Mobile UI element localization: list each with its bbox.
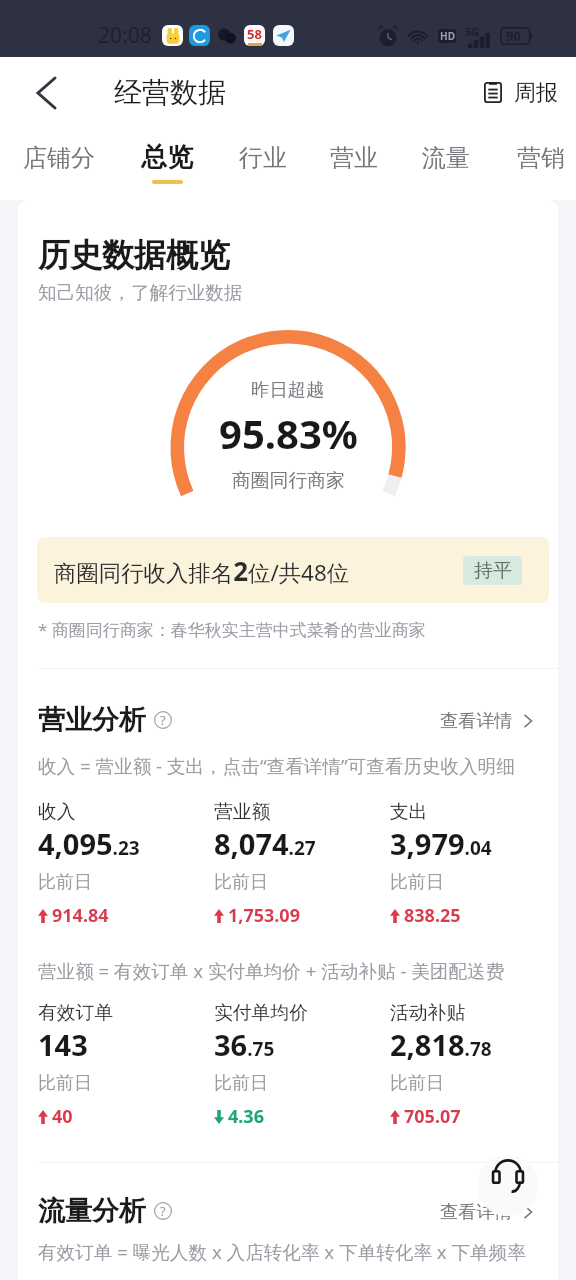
staticText: 90: [506, 27, 521, 45]
button[interactable]: 流量: [386, 128, 506, 173]
staticText: 1,753.09: [228, 903, 300, 928]
button[interactable]: Help: [154, 1202, 172, 1220]
staticText: 总览: [141, 141, 193, 174]
staticText: 914.84: [52, 903, 109, 928]
staticText: 58: [247, 25, 262, 43]
staticText: 经营数据: [114, 75, 226, 110]
staticText: 2,818.78: [390, 1025, 492, 1064]
staticText: 历史数据概览: [38, 235, 230, 275]
staticText: 比前日: [390, 1072, 444, 1095]
staticText: 20:08: [98, 21, 152, 50]
staticText: 3,979.04: [390, 824, 492, 863]
staticText: 流量: [422, 143, 470, 173]
staticText: 有效订单 = 曝光人数 x 入店转化率 x 下单转化率 x 下单频率: [38, 1239, 526, 1264]
staticText: HD: [440, 29, 455, 43]
staticText: 比前日: [390, 871, 444, 894]
button[interactable]: Back: [0, 57, 92, 128]
button[interactable]: Customer service: [477, 1155, 538, 1216]
staticText: 4,095.23: [38, 824, 140, 863]
button[interactable]: 查看详情: [440, 1200, 533, 1223]
button[interactable]: 行业: [203, 128, 323, 173]
staticText: 比前日: [38, 871, 92, 894]
staticText: 5G: [465, 24, 480, 39]
staticText: 705.07: [404, 1104, 461, 1129]
staticText: 支出: [390, 800, 428, 824]
staticText: 实付单均价: [214, 1001, 308, 1025]
staticText: ?: [160, 711, 166, 729]
staticText: 活动补贴: [390, 1001, 466, 1025]
staticText: 昨日超越: [251, 378, 325, 401]
staticText: 4.36: [228, 1104, 264, 1129]
staticText: 838.25: [404, 903, 461, 928]
staticText: 查看详情: [440, 709, 513, 732]
button[interactable]: 营业: [294, 128, 414, 173]
staticText: 40: [52, 1104, 73, 1129]
staticText: 商圈同行收入排名2位/共48位: [54, 553, 350, 588]
button[interactable]: 营销: [481, 128, 576, 173]
staticText: 有效订单: [38, 1001, 114, 1025]
staticText: 营业额 = 有效订单 x 实付单均价 + 活动补贴 - 美团配送费: [38, 958, 505, 983]
staticText: 比前日: [214, 1072, 268, 1095]
staticText: ?: [160, 1202, 166, 1220]
button[interactable]: 店铺分: [0, 128, 119, 173]
staticText: 8,074.27: [214, 824, 316, 863]
staticText: 收入 = 营业额 - 支出，点击“查看详情”可查看历史收入明细: [38, 753, 515, 778]
staticText: 周报: [514, 79, 558, 107]
staticText: 营业: [330, 143, 378, 173]
staticText: 营销: [517, 143, 565, 173]
staticText: 95.83%: [219, 406, 358, 460]
button[interactable]: 总览: [107, 128, 227, 184]
staticText: 店铺分: [23, 143, 95, 173]
staticText: 比前日: [214, 871, 268, 894]
staticText: 36.75: [214, 1025, 275, 1064]
staticText: 比前日: [38, 1072, 92, 1095]
staticText: 流量分析: [38, 1194, 146, 1228]
button[interactable]: Help: [154, 711, 172, 729]
button[interactable]: 查看详情: [440, 709, 533, 732]
staticText: 知己知彼，了解行业数据: [38, 281, 243, 304]
button[interactable]: 周报: [484, 57, 558, 128]
staticText: * 商圈同行商家：春华秋实主营中式菜肴的营业商家: [38, 618, 426, 641]
staticText: 收入: [38, 800, 76, 824]
staticText: 持平: [474, 559, 512, 583]
staticText: 查看详情: [440, 1200, 513, 1223]
staticText: 营业分析: [38, 703, 146, 737]
staticText: 营业额: [214, 800, 271, 824]
staticText: 行业: [239, 143, 287, 173]
staticText: 143: [38, 1025, 88, 1064]
staticText: 商圈同行商家: [232, 469, 345, 493]
